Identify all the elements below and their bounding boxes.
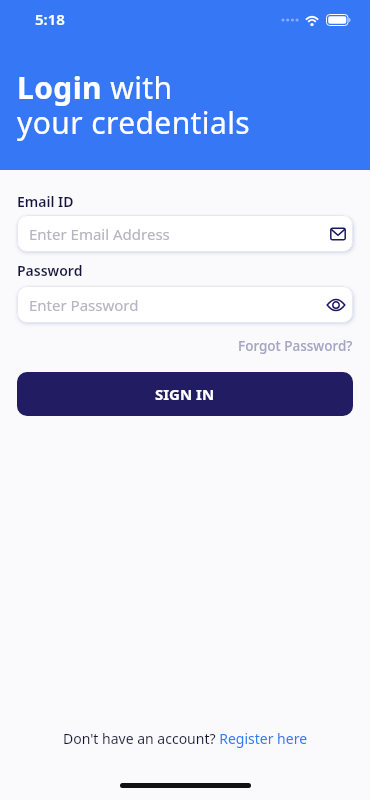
staticText: 5:18 — [35, 9, 65, 29]
button[interactable]: SIGN IN — [17, 372, 353, 416]
button[interactable]: Enter Password — [17, 286, 353, 323]
button[interactable]: Don't have an account? Register here — [63, 729, 308, 748]
staticText: Enter Email Address — [29, 224, 170, 244]
button[interactable]: Forgot Password? — [238, 337, 353, 355]
button[interactable]: Enter Email Address — [17, 215, 353, 252]
staticText: SIGN IN — [155, 384, 215, 404]
staticText: Enter Password — [29, 295, 139, 315]
staticText: Email ID — [17, 192, 74, 211]
staticText: Login with your credentials — [17, 67, 251, 143]
staticText: Password — [17, 261, 83, 280]
